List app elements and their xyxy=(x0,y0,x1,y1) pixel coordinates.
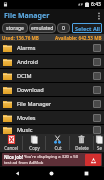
staticText: Movies xyxy=(17,114,93,122)
button[interactable]: Select All xyxy=(72,23,102,33)
button[interactable]: storage xyxy=(2,23,28,33)
button[interactable]: DCIM xyxy=(0,69,104,82)
staticText: Android xyxy=(17,58,93,66)
button[interactable]: emulated xyxy=(29,23,56,33)
staticText: Delete xyxy=(75,145,89,151)
staticText: Available: 642.53 MB xyxy=(55,35,102,41)
staticText: Nice job! xyxy=(4,154,23,160)
button[interactable]: Cut xyxy=(46,134,69,152)
button[interactable]: File Manager xyxy=(0,97,104,110)
staticText: Music xyxy=(17,126,93,134)
staticText: test ad from AdMob xyxy=(4,160,44,166)
staticText: Cancel xyxy=(4,145,18,151)
staticText: File Manager xyxy=(17,100,93,108)
button[interactable]: Android xyxy=(0,55,104,68)
staticText: Copy xyxy=(29,145,40,151)
button[interactable]: Home xyxy=(34,167,69,180)
staticText: You're displaying a 320 x 50 xyxy=(24,154,79,160)
staticText: DCIM xyxy=(17,72,93,80)
button[interactable]: Cancel xyxy=(0,134,22,152)
button[interactable]: 0 xyxy=(57,23,70,33)
staticText: 0 xyxy=(62,25,65,32)
staticText: Alarms xyxy=(17,44,93,52)
button[interactable]: Select Movies xyxy=(93,114,101,122)
staticText: Download xyxy=(17,86,93,94)
button[interactable]: Download xyxy=(0,83,104,96)
staticText: storage xyxy=(6,25,24,32)
button[interactable]: Copy xyxy=(23,134,45,152)
staticText: Cut xyxy=(54,145,62,151)
staticText: File Manager xyxy=(4,11,50,21)
staticText: Select All xyxy=(75,25,100,32)
button[interactable]: More options xyxy=(93,9,104,22)
button[interactable]: Back xyxy=(0,167,34,180)
button[interactable]: Alarms xyxy=(0,41,104,54)
button[interactable]: Select Android xyxy=(93,58,101,66)
button[interactable]: Select Alarms xyxy=(93,44,101,52)
button[interactable]: Se xyxy=(94,134,104,152)
button[interactable]: Recent apps xyxy=(69,167,104,180)
button[interactable]: Delete xyxy=(70,134,93,152)
button[interactable]: Select File Manager xyxy=(93,100,101,108)
staticText: 6:43 xyxy=(91,1,101,8)
button[interactable]: Select DCIM xyxy=(93,72,101,80)
button[interactable]: Select Music xyxy=(93,126,101,134)
button[interactable]: Music xyxy=(0,125,104,134)
button[interactable]: Nice job! xyxy=(2,153,102,166)
button[interactable]: Select Download xyxy=(93,86,101,94)
staticText: Used: 136.76 MB xyxy=(2,35,39,41)
staticText: Se xyxy=(97,145,102,151)
button[interactable]: Movies xyxy=(0,111,104,124)
staticText: emulated xyxy=(31,25,54,32)
